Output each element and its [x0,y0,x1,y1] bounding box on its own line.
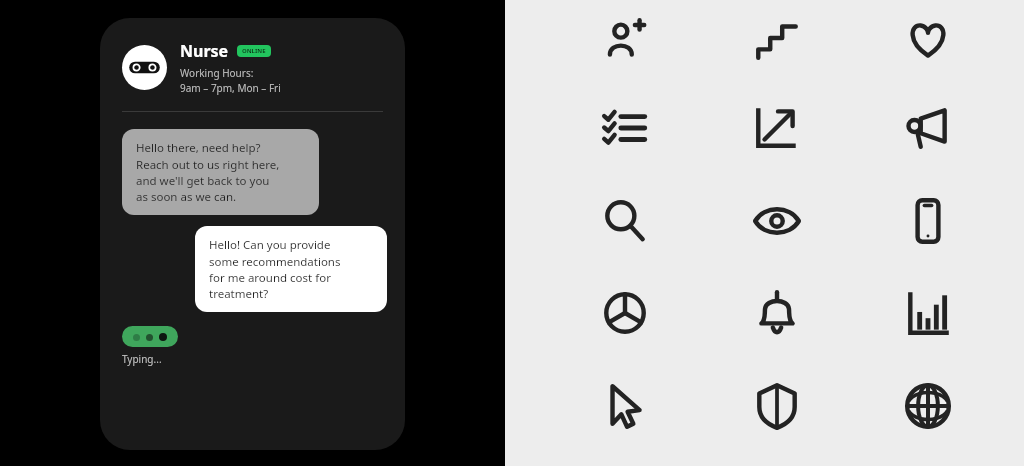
button[interactable]: Checklist [599,101,651,153]
staticText: ONLINE [242,47,266,55]
button[interactable]: Growth [751,101,803,153]
other: Nurse avatar [122,45,167,90]
staticText: Working Hours: [180,66,254,80]
button[interactable]: Hello! Can you provide some recommendati… [195,226,387,312]
staticText: Hello there, need help? Reach out to us … [136,140,280,204]
button[interactable]: Nurse avatar [122,40,387,95]
button[interactable]: Heart [902,14,954,66]
button[interactable]: Phone [902,195,954,247]
button[interactable]: Eye [751,195,803,247]
staticText: Hello! Can you provide some recommendati… [209,237,341,301]
button[interactable]: Globe [902,380,954,432]
button[interactable]: Notifications [751,287,803,339]
button[interactable]: Megaphone [902,101,954,153]
button[interactable]: Search [599,195,651,247]
button[interactable]: Pie chart [599,287,651,339]
staticText: Typing... [122,352,162,366]
staticText: 9am – 7pm, Mon – Fri [180,81,281,95]
button[interactable]: Stairs [751,14,803,66]
button[interactable]: Cursor [599,380,651,432]
button[interactable]: Shield [751,380,803,432]
staticText: Nurse [180,40,229,62]
button[interactable]: Bar chart [902,287,954,339]
button[interactable]: Hello there, need help? Reach out to us … [122,129,319,215]
button[interactable]: Add person [599,14,651,66]
